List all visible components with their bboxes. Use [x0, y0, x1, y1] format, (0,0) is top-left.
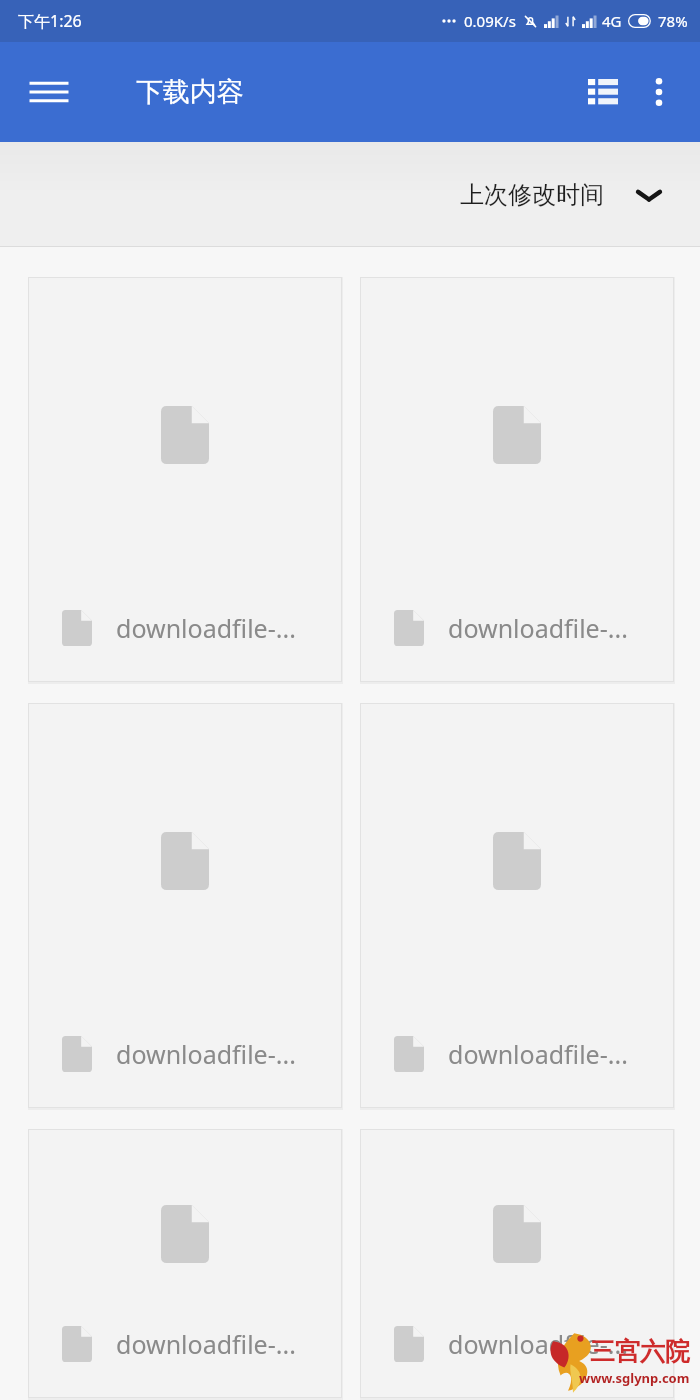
staticText: 78%	[658, 11, 688, 31]
staticText: 下载内容	[136, 75, 244, 109]
staticText: 上次修改时间	[460, 180, 604, 210]
staticText: downloadfile-...	[116, 1037, 296, 1071]
button[interactable]: downloadfile-...	[360, 703, 674, 1108]
button[interactable]: downloadfile-...	[28, 703, 342, 1108]
button[interactable]: Switch to list view	[576, 65, 630, 119]
staticText: 4G	[602, 11, 622, 31]
staticText: 下午1:26	[18, 10, 82, 32]
button[interactable]: downloadfile-...	[28, 277, 342, 682]
staticText: downloadfile-...	[448, 1327, 628, 1361]
button[interactable]: 上次修改时间	[452, 170, 670, 220]
staticText: downloadfile-...	[448, 611, 628, 645]
staticText: www.sglynp.com	[579, 1369, 690, 1387]
button[interactable]: downloadfile-...	[360, 277, 674, 682]
staticText: downloadfile-...	[116, 611, 296, 645]
staticText: 0.09K/s	[464, 11, 516, 31]
button[interactable]: Open navigation menu	[22, 65, 76, 119]
staticText: downloadfile-...	[116, 1327, 296, 1361]
button[interactable]: downloadfile-...	[360, 1129, 674, 1398]
button[interactable]: downloadfile-...	[28, 1129, 342, 1398]
staticText: downloadfile-...	[448, 1037, 628, 1071]
staticText: 三宫六院	[590, 1336, 690, 1367]
button[interactable]: More options	[632, 65, 686, 119]
